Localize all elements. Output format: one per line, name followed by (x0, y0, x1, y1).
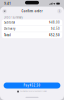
button[interactable]: Close (2, 9, 7, 13)
button[interactable]: Pay $52.50 (4, 82, 60, 88)
staticText: Pay $52.50 (23, 84, 40, 87)
staticText: Delivery (4, 27, 15, 30)
staticText: Payments are secure and encrypted (20, 90, 47, 92)
staticText: $48.00 (49, 21, 60, 24)
staticText: Confirm order (21, 9, 42, 13)
staticText: Order summary (3, 16, 22, 19)
staticText: $4.50 (51, 27, 60, 30)
button[interactable]: More information (57, 9, 62, 13)
staticText: i (59, 9, 60, 13)
staticText: $52.50 (49, 33, 60, 37)
staticText: Subtotal (4, 21, 15, 24)
staticText: 9:41 (4, 2, 11, 5)
staticText: Total (4, 33, 11, 37)
